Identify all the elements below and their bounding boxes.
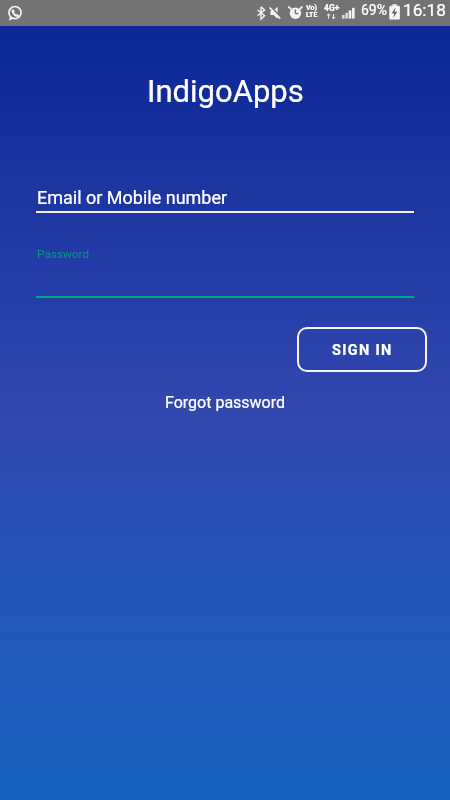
staticText: Email or Mobile number <box>37 187 228 208</box>
staticText: 16:18 <box>403 0 446 20</box>
staticText: Forgot password <box>165 393 286 412</box>
staticText: Password <box>37 247 90 261</box>
staticText: 4G+ <box>324 3 340 13</box>
staticText: IndigoApps <box>147 73 304 109</box>
staticText: LTE <box>306 11 318 19</box>
staticText: SIGN IN <box>332 342 393 359</box>
button[interactable]: SIGN IN <box>297 327 427 372</box>
staticText: Vo) <box>306 4 317 12</box>
staticText: 69% <box>361 2 387 18</box>
button[interactable]: Forgot password <box>165 393 286 412</box>
